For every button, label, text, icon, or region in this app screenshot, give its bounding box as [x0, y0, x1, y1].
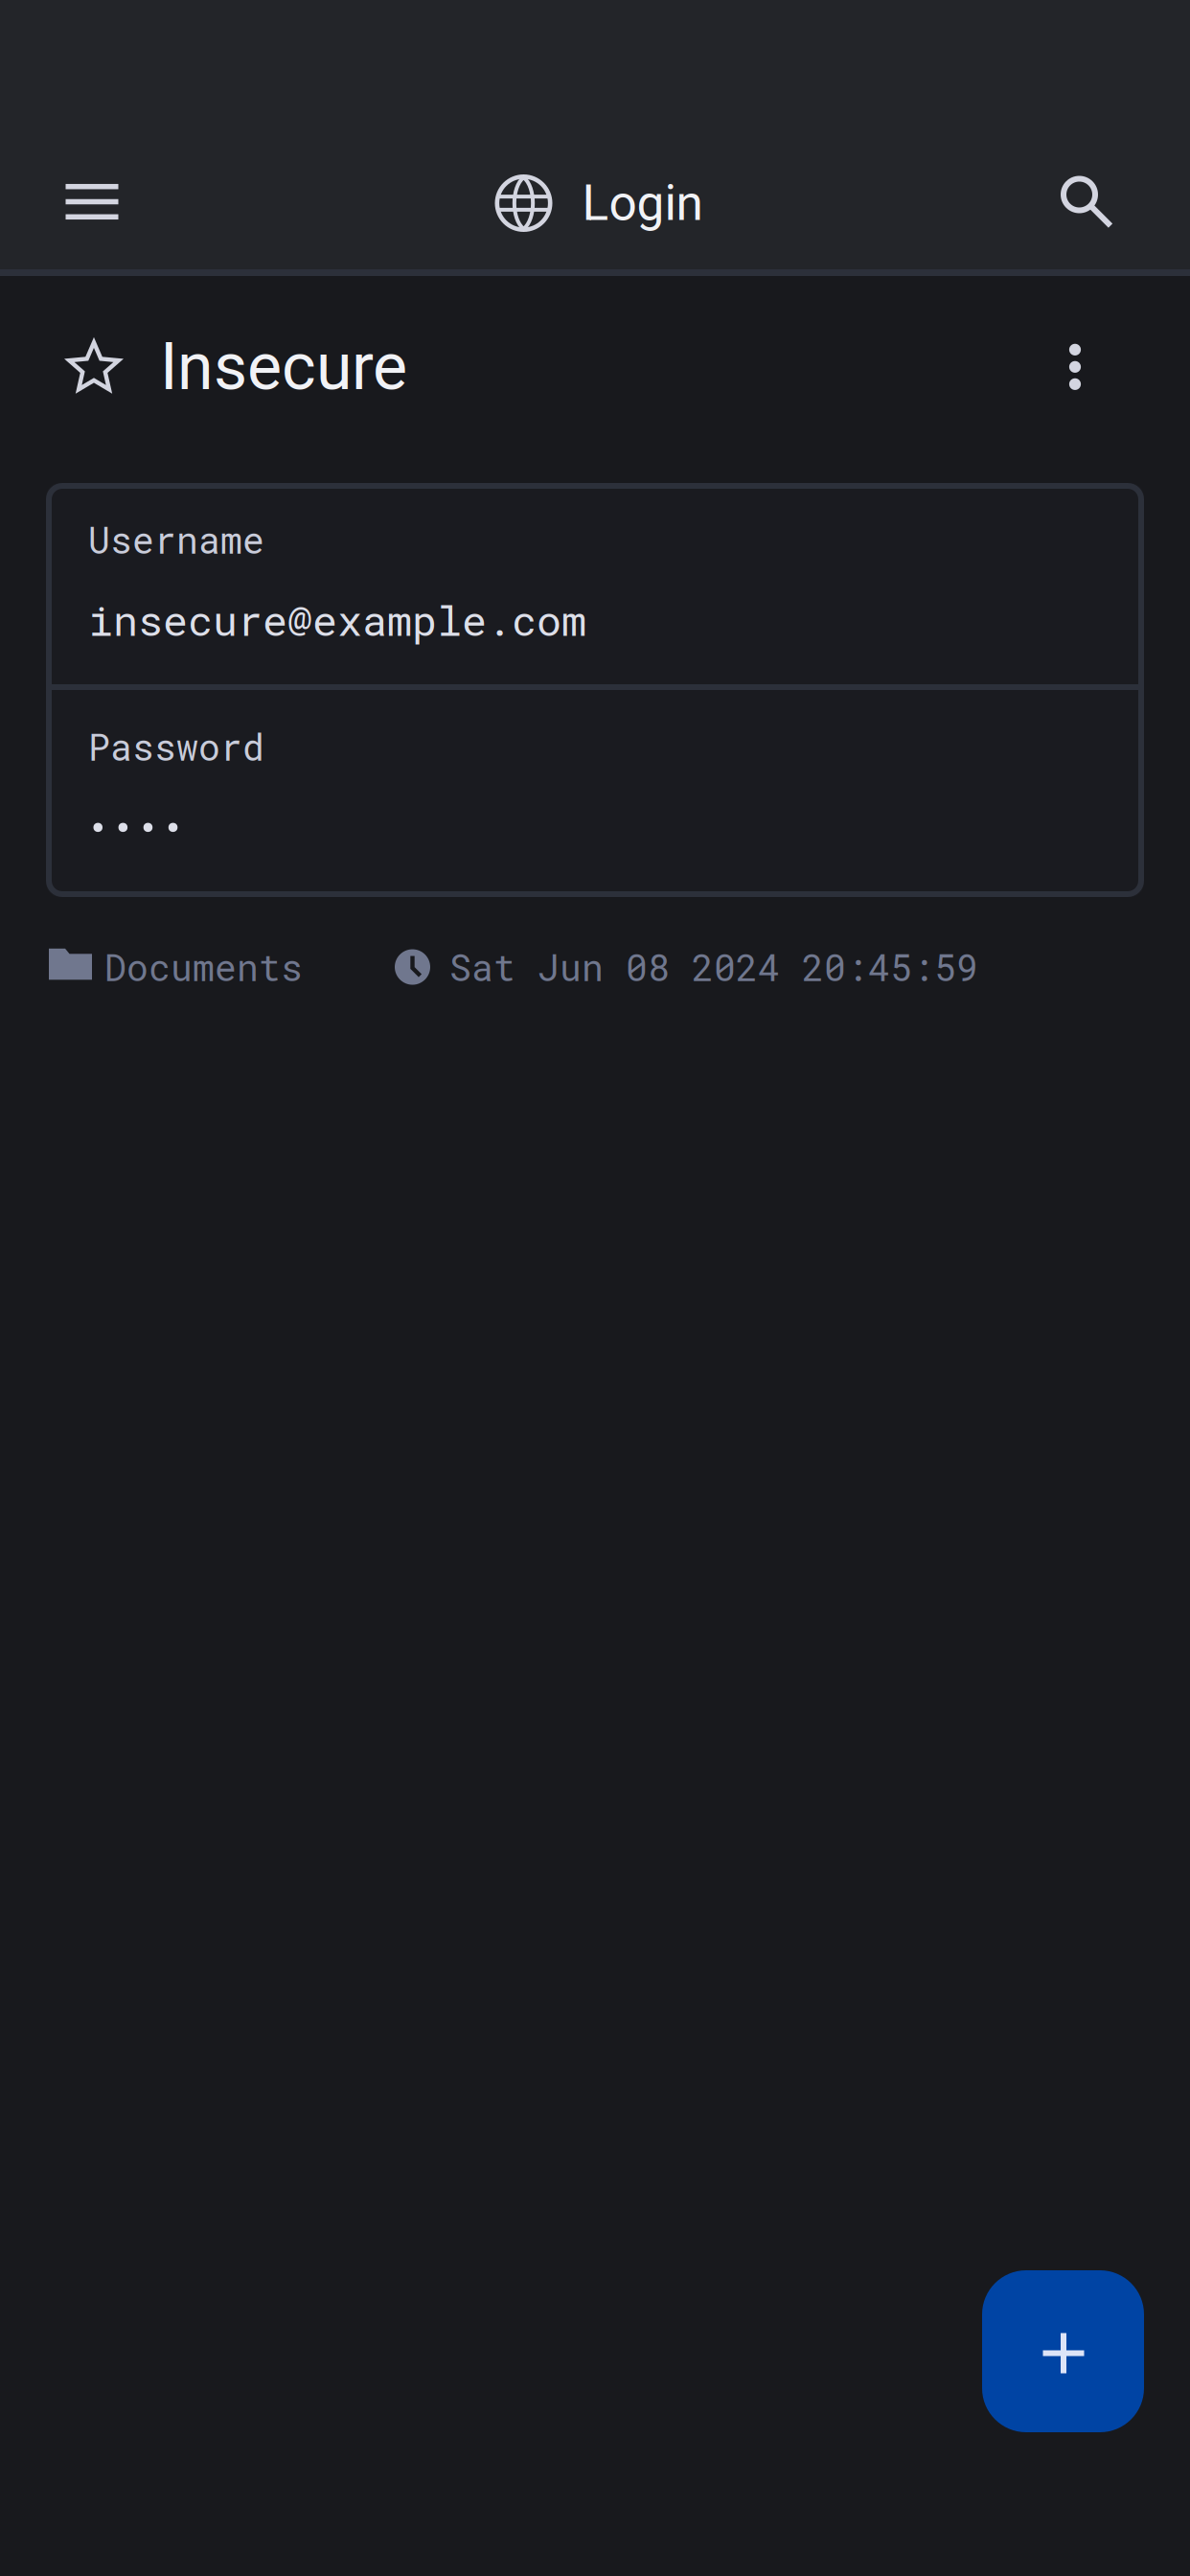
button[interactable]: Search — [1041, 156, 1133, 248]
button[interactable]: Add entry — [982, 2270, 1144, 2432]
staticText: insecure@example.com — [88, 592, 586, 647]
button[interactable]: Menu — [46, 156, 138, 248]
staticText: Sat Jun 08 2024 20:45:59 — [449, 943, 978, 991]
button[interactable]: Username — [46, 483, 1144, 684]
staticText: Insecure — [160, 329, 407, 405]
staticText: Documents — [104, 943, 303, 991]
button[interactable]: More options — [1029, 321, 1121, 413]
button[interactable]: Insecure — [65, 311, 407, 422]
staticText: Login — [582, 174, 703, 232]
staticText: Password — [88, 723, 264, 771]
staticText: Username — [88, 516, 264, 564]
button[interactable]: Password — [46, 690, 1144, 897]
